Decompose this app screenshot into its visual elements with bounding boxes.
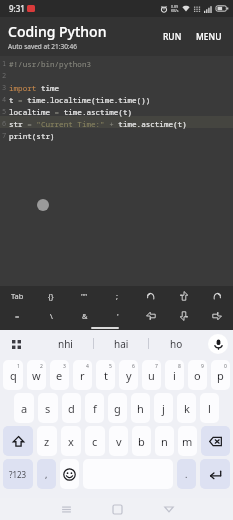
- staticText: Auto saved at 21:30:46: [8, 42, 78, 51]
- button[interactable]: right: [200, 306, 233, 326]
- staticText: 1: [2, 59, 9, 69]
- button[interactable]: i: [165, 360, 184, 390]
- staticText: print(str): [9, 131, 55, 141]
- button[interactable]: k: [177, 393, 196, 423]
- button[interactable]: &: [68, 306, 101, 326]
- staticText: l: [208, 401, 211, 416]
- staticText: ;: [116, 291, 119, 301]
- staticText: m: [182, 434, 193, 449]
- button[interactable]: shift: [167, 286, 200, 306]
- button[interactable]: c: [85, 426, 105, 456]
- staticText: f: [93, 401, 97, 416]
- button[interactable]: Shift: [3, 426, 33, 456]
- staticText: c: [92, 434, 98, 449]
- staticText: q: [10, 368, 17, 383]
- button[interactable]: z: [37, 426, 57, 456]
- button[interactable]: Emoji: [60, 459, 79, 489]
- button[interactable]: h: [131, 393, 150, 423]
- button[interactable]: y: [119, 360, 138, 390]
- button[interactable]: MENU: [191, 27, 227, 47]
- staticText: 8: [178, 363, 181, 370]
- button[interactable]: Voice input: [208, 334, 228, 354]
- button[interactable]: Back: [143, 498, 194, 520]
- button[interactable]: t: [96, 360, 115, 390]
- button[interactable]: u: [142, 360, 161, 390]
- staticText: 6: [2, 119, 9, 129]
- staticText: #!/usr/bin/python3: [9, 59, 92, 69]
- button[interactable]: Enter: [200, 459, 230, 489]
- staticText: =: [15, 311, 20, 321]
- button[interactable]: e: [50, 360, 69, 390]
- staticText: u: [148, 368, 155, 383]
- button[interactable]: p: [211, 360, 230, 390]
- button[interactable]: undo: [134, 286, 167, 306]
- button[interactable]: ?123: [3, 459, 33, 489]
- staticText: d: [68, 401, 75, 416]
- staticText: "": [81, 291, 88, 301]
- button[interactable]: n: [155, 426, 174, 456]
- staticText: 9: [201, 363, 204, 370]
- staticText: .: [185, 468, 188, 480]
- button[interactable]: g: [108, 393, 127, 423]
- staticText: import time: [9, 83, 60, 93]
- button[interactable]: Backspace: [201, 426, 230, 456]
- staticText: str = "Current Time:" + time.asctime(t): [9, 119, 187, 129]
- button[interactable]: Keyboard options: [8, 336, 24, 352]
- staticText: e: [56, 368, 63, 383]
- staticText: 7: [2, 131, 9, 141]
- staticText: t: [104, 368, 108, 383]
- button[interactable]: ': [101, 306, 134, 326]
- button[interactable]: d: [62, 393, 81, 423]
- button[interactable]: f: [85, 393, 104, 423]
- button[interactable]: ho: [149, 330, 203, 357]
- button[interactable]: redo: [200, 286, 233, 306]
- button[interactable]: \: [34, 306, 68, 326]
- button[interactable]: w: [27, 360, 46, 390]
- staticText: r: [80, 368, 85, 383]
- staticText: x: [68, 434, 74, 449]
- staticText: 4: [86, 363, 89, 370]
- staticText: p: [217, 368, 224, 383]
- staticText: hai: [114, 337, 129, 351]
- staticText: Coding Python: [8, 22, 107, 41]
- button[interactable]: o: [188, 360, 207, 390]
- staticText: w: [32, 368, 41, 383]
- other: Cursor handle: [37, 199, 49, 211]
- staticText: 4: [2, 95, 9, 105]
- button[interactable]: RUN: [158, 27, 187, 47]
- button[interactable]: ;: [101, 286, 134, 306]
- staticText: MENU: [196, 31, 222, 43]
- staticText: 0: [224, 363, 227, 370]
- button[interactable]: l: [200, 393, 219, 423]
- button[interactable]: q: [3, 360, 23, 390]
- button[interactable]: down: [167, 306, 200, 326]
- staticText: j: [162, 401, 165, 416]
- button[interactable]: .: [177, 459, 196, 489]
- button[interactable]: r: [73, 360, 92, 390]
- staticText: nhi: [58, 337, 73, 351]
- button[interactable]: v: [109, 426, 128, 456]
- button[interactable]: Tab: [0, 286, 34, 306]
- button[interactable]: nhi: [38, 330, 93, 357]
- staticText: \: [50, 311, 53, 321]
- button[interactable]: hai: [94, 330, 148, 357]
- staticText: h: [137, 401, 144, 416]
- button[interactable]: Recents: [40, 498, 92, 520]
- staticText: 9:31: [9, 3, 25, 14]
- button[interactable]: a: [14, 393, 34, 423]
- staticText: 1: [17, 363, 20, 370]
- button[interactable]: Home: [92, 498, 143, 520]
- button[interactable]: j: [154, 393, 173, 423]
- button[interactable]: {}: [34, 286, 68, 306]
- staticText: ,: [45, 468, 48, 480]
- button[interactable]: ,: [37, 459, 56, 489]
- button[interactable]: left: [134, 306, 167, 326]
- staticText: s: [45, 401, 51, 416]
- button[interactable]: b: [132, 426, 151, 456]
- button[interactable]: m: [178, 426, 197, 456]
- button[interactable]: s: [38, 393, 58, 423]
- button[interactable]: "": [68, 286, 101, 306]
- button[interactable]: =: [0, 306, 34, 326]
- button[interactable]: x: [61, 426, 81, 456]
